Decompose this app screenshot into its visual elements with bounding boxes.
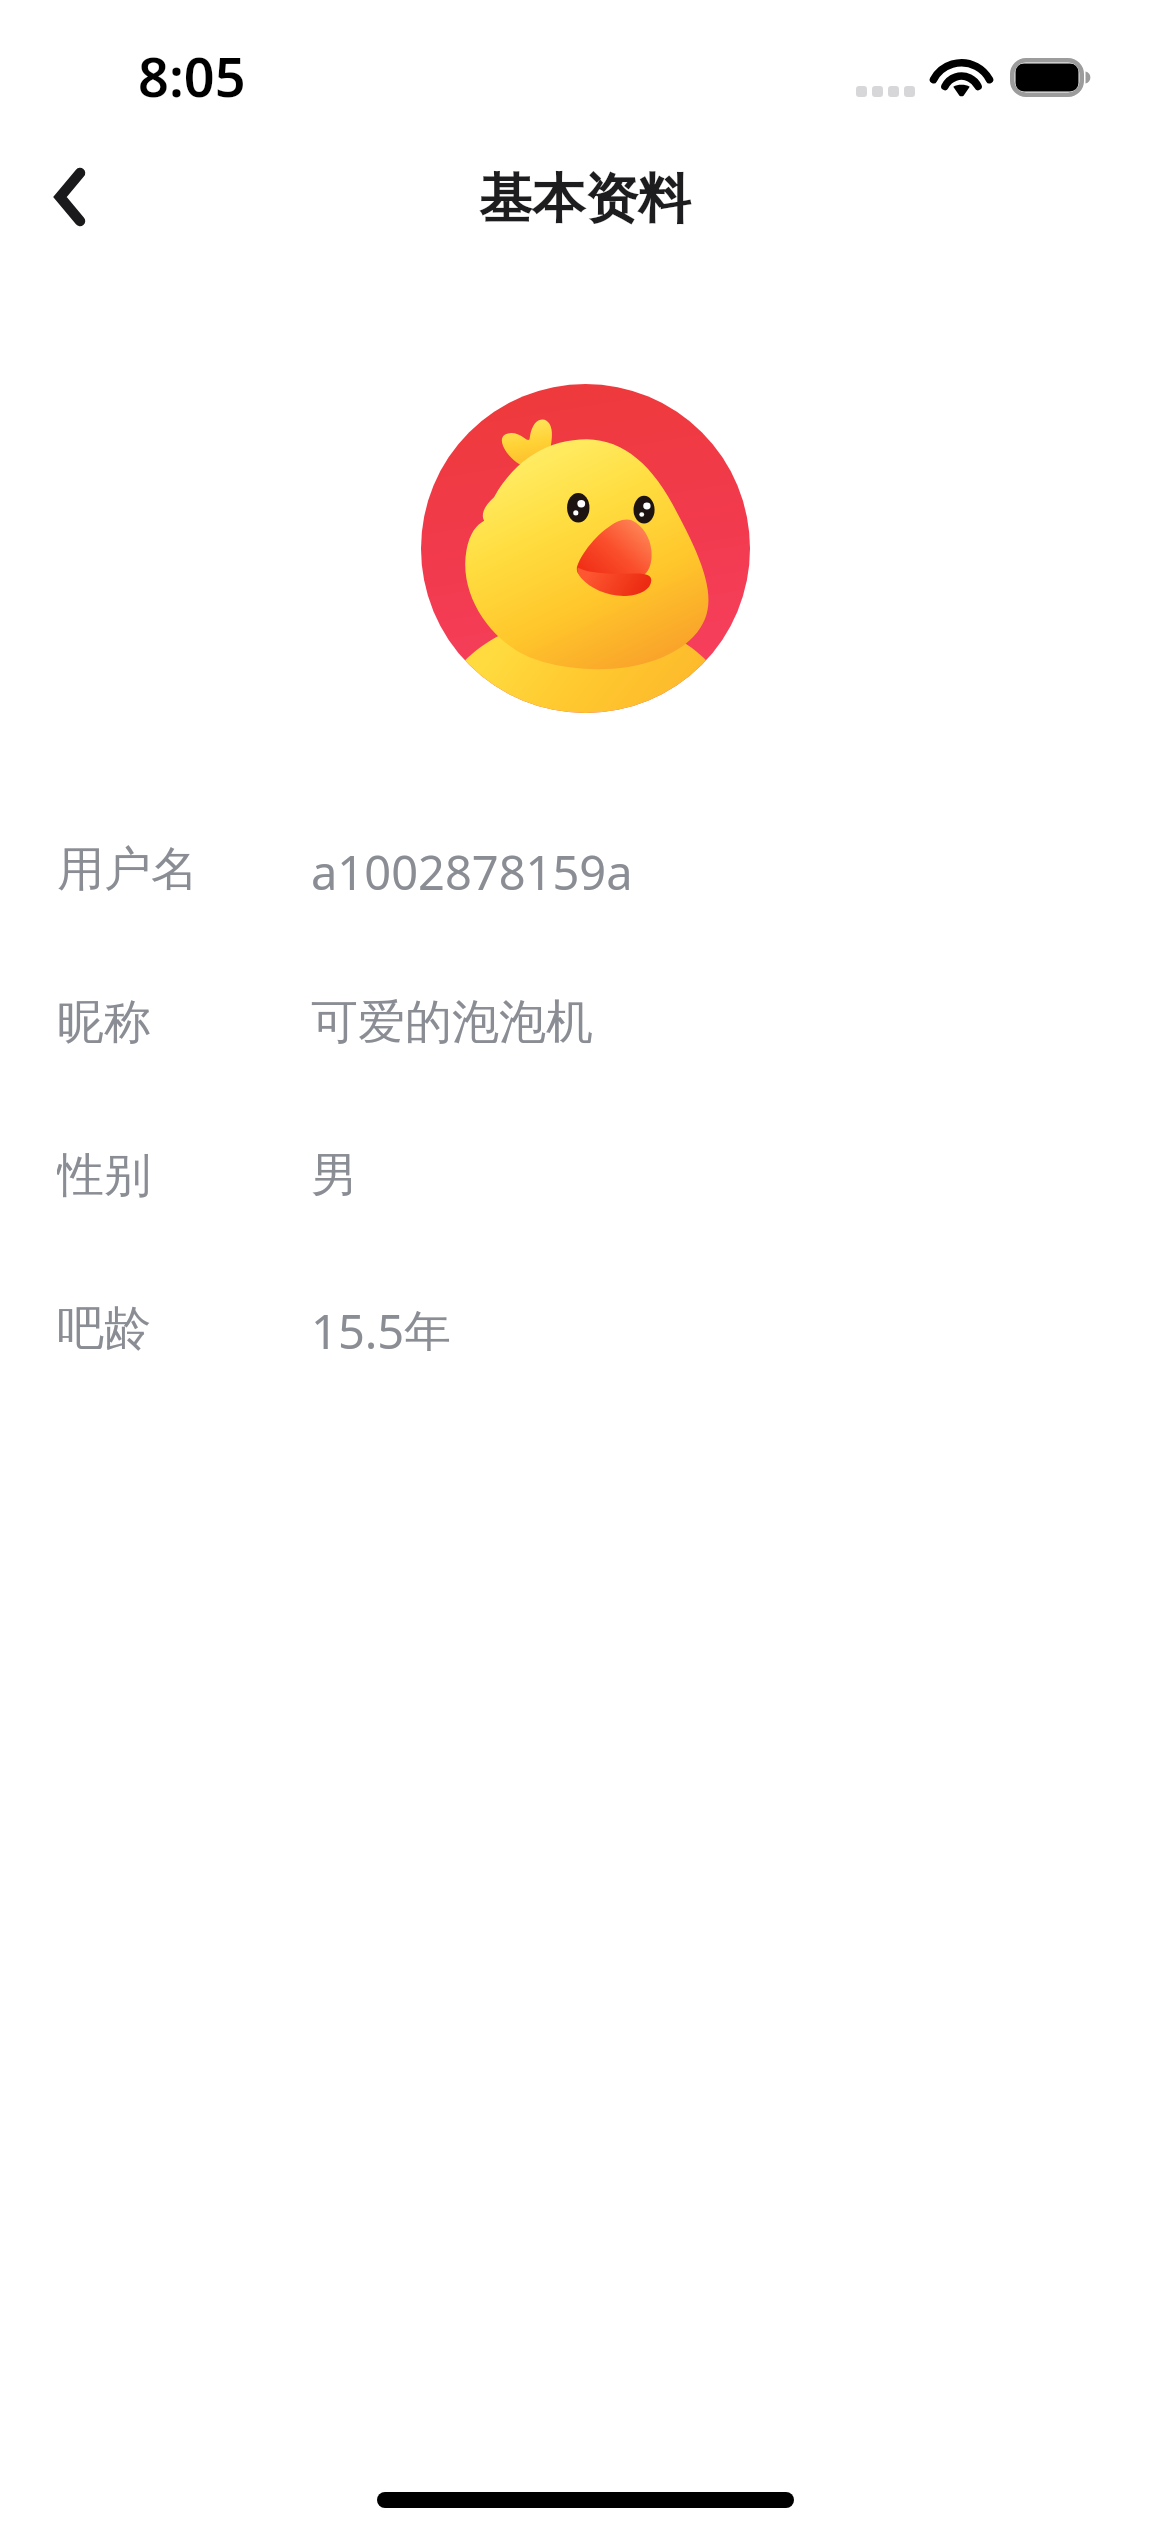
staticText: 可爱的泡泡机 <box>311 993 593 1045</box>
staticText: a1002878159a <box>311 840 633 892</box>
button[interactable]: Back <box>30 157 110 237</box>
button[interactable]: 吧龄 <box>0 1299 1170 1351</box>
staticText: 昵称 <box>57 993 151 1045</box>
staticText: 吧龄 <box>57 1299 151 1351</box>
button[interactable]: 昵称 <box>0 993 1170 1045</box>
staticText: 用户名 <box>57 840 198 892</box>
button[interactable]: Profile avatar <box>421 384 750 713</box>
button[interactable]: 性别 <box>0 1146 1170 1198</box>
button[interactable]: 用户名 <box>0 840 1170 892</box>
staticText: 15.5年 <box>311 1299 452 1351</box>
staticText: 基本资料 <box>479 166 691 233</box>
staticText: 8:05 <box>138 39 246 113</box>
staticText: 性别 <box>57 1146 151 1198</box>
staticText: 男 <box>311 1146 358 1198</box>
